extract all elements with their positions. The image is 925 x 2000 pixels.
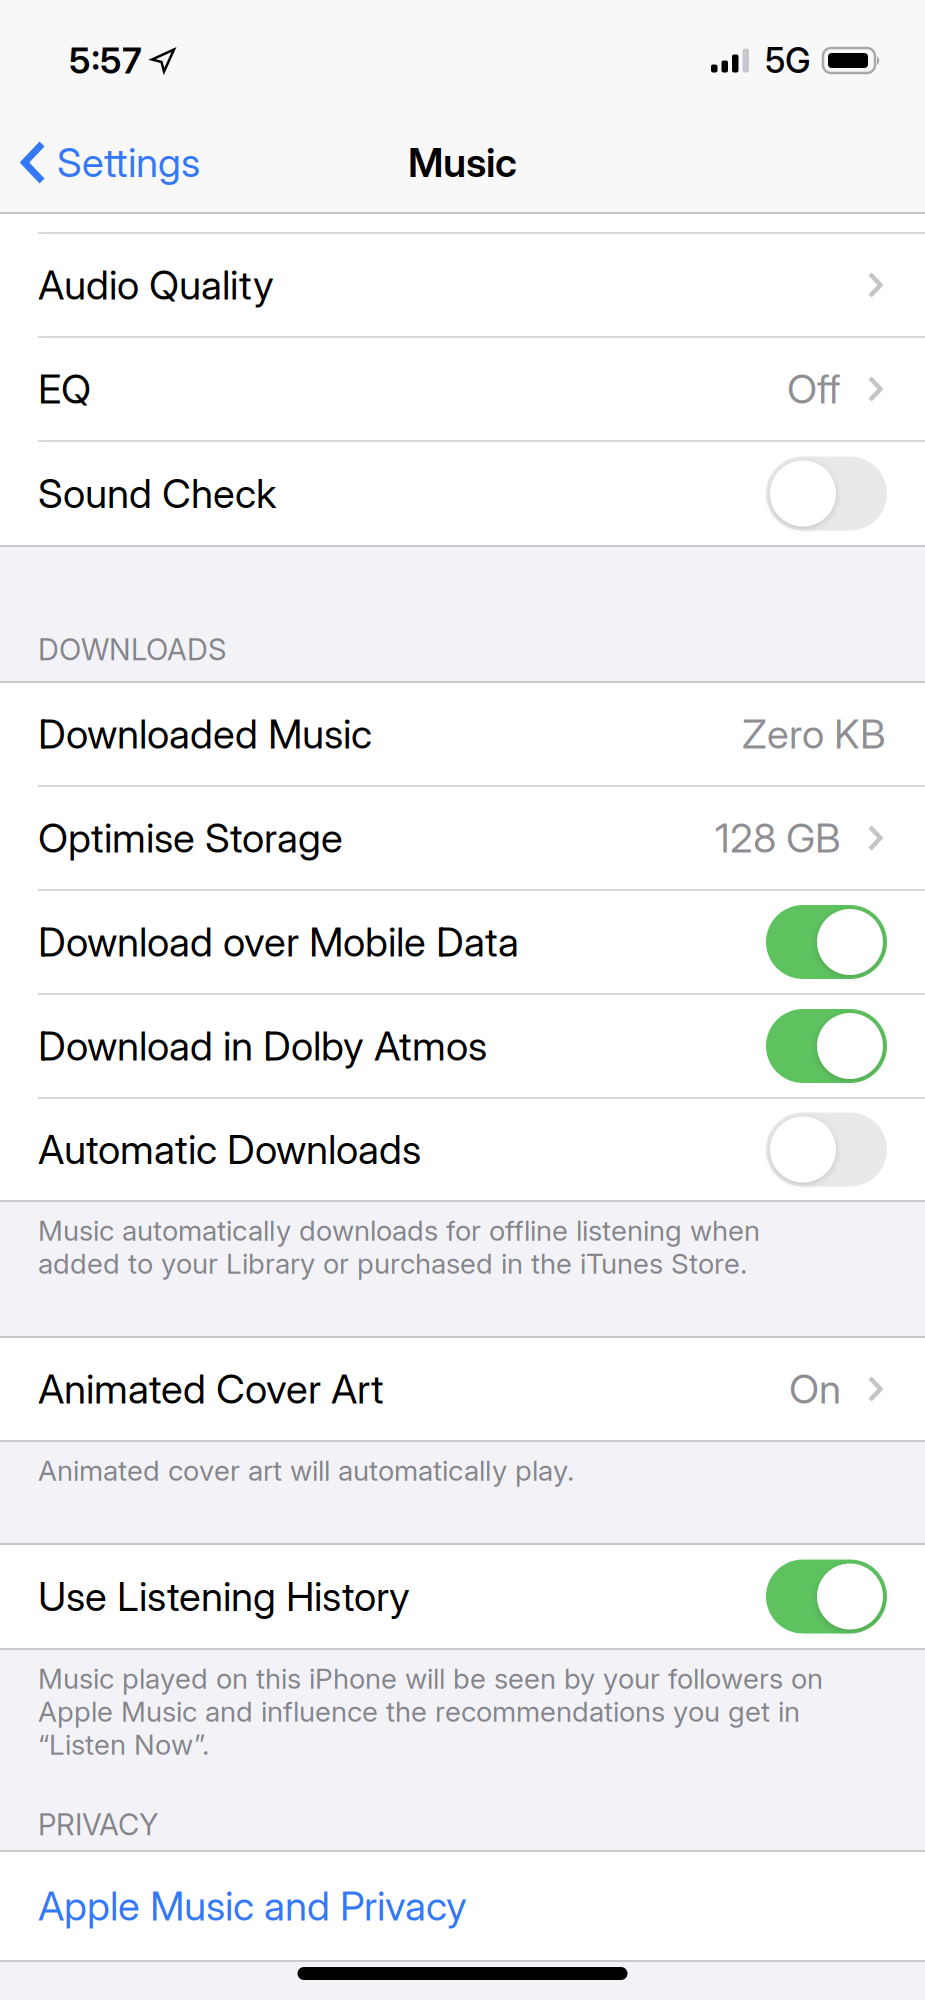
button[interactable]: Optimise Storage <box>0 787 925 889</box>
button[interactable]: Settings <box>0 139 200 186</box>
button[interactable]: Use Listening History <box>0 1545 925 1648</box>
button[interactable]: Downloaded Music <box>0 683 925 785</box>
staticText: 5G <box>765 40 811 81</box>
staticText: Use Listening History <box>38 1573 410 1620</box>
staticText: Audio Quality <box>38 261 274 309</box>
staticText: Zero KB <box>742 710 886 758</box>
button[interactable]: Audio Quality <box>0 234 925 336</box>
button[interactable]: Download in Dolby Atmos <box>0 995 925 1097</box>
staticText: Download in Dolby Atmos <box>38 1022 487 1070</box>
staticText: PRIVACY <box>38 1807 158 1842</box>
staticText: Automatic Downloads <box>38 1126 421 1173</box>
staticText: Animated cover art will automatically pl… <box>38 1454 574 1487</box>
staticText: DOWNLOADS <box>38 632 226 667</box>
button[interactable]: Automatic Downloads <box>0 1099 925 1200</box>
button[interactable]: Download over Mobile Data <box>0 891 925 993</box>
button[interactable]: Apple Music and Privacy <box>0 1852 925 1960</box>
button[interactable]: Sound Check <box>0 442 925 545</box>
staticText: Downloaded Music <box>38 710 372 758</box>
button[interactable]: Animated Cover Art <box>0 1338 925 1440</box>
staticText: 128 GB <box>715 814 841 862</box>
staticText: Animated Cover Art <box>38 1365 384 1413</box>
staticText: Music played on this iPhone will be seen… <box>38 1662 823 1761</box>
staticText: Off <box>787 365 841 413</box>
staticText: Music automatically downloads for offlin… <box>38 1214 760 1280</box>
staticText: Sound Check <box>38 470 276 517</box>
staticText: Music <box>408 139 517 186</box>
staticText: Settings <box>57 139 200 186</box>
staticText: On <box>789 1365 841 1413</box>
staticText: Download over Mobile Data <box>38 918 519 966</box>
staticText: 5:57 <box>69 39 142 82</box>
staticText: Apple Music and Privacy <box>38 1882 467 1930</box>
button[interactable]: EQ <box>0 338 925 440</box>
staticText: EQ <box>38 365 91 413</box>
staticText: Optimise Storage <box>38 814 343 862</box>
